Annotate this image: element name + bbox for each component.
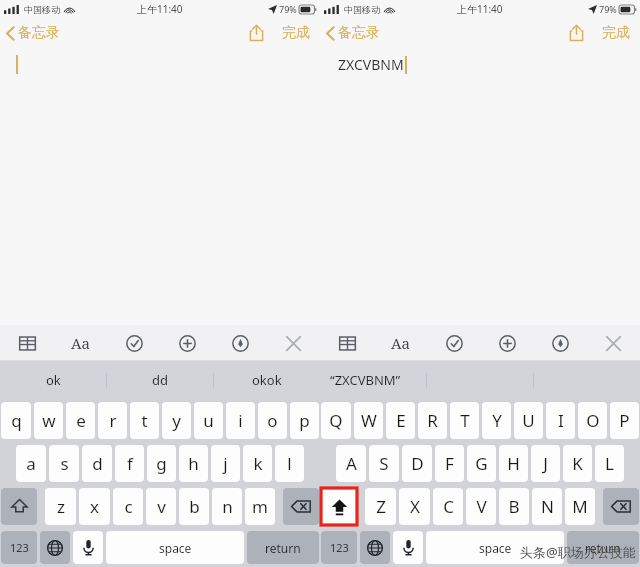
button[interactable]: j xyxy=(211,445,240,482)
button[interactable]: Add attachment xyxy=(161,325,214,361)
button[interactable]: c xyxy=(113,488,143,525)
button[interactable]: C xyxy=(433,488,463,525)
button[interactable]: 完成 xyxy=(278,20,314,46)
button[interactable]: Share xyxy=(565,20,588,46)
button[interactable]: M xyxy=(565,488,595,525)
button[interactable]: 123 xyxy=(321,531,357,564)
button[interactable]: 完成 xyxy=(598,20,634,46)
button[interactable]: R xyxy=(418,402,447,439)
button[interactable]: Dictation xyxy=(393,531,423,564)
button[interactable]: k xyxy=(243,445,272,482)
button[interactable]: p xyxy=(290,402,319,439)
button[interactable]: Checklist xyxy=(108,325,161,361)
button[interactable]: Backspace xyxy=(603,488,639,525)
staticText: X xyxy=(410,495,420,518)
button[interactable]: 备忘录 xyxy=(320,21,388,45)
button[interactable]: Table xyxy=(320,325,374,361)
button[interactable]: P xyxy=(610,402,639,439)
button[interactable]: Backspace xyxy=(283,488,319,525)
button[interactable]: S xyxy=(369,445,399,482)
button[interactable]: X xyxy=(399,488,430,525)
button[interactable]: Switch keyboard xyxy=(360,531,390,564)
button[interactable]: d xyxy=(82,445,112,482)
button[interactable]: Table xyxy=(0,325,54,361)
staticText: dd xyxy=(152,371,168,389)
button[interactable]: space xyxy=(106,531,244,564)
button[interactable]: Checklist xyxy=(428,325,481,361)
button[interactable]: J xyxy=(531,445,560,482)
staticText: B xyxy=(508,495,520,518)
button[interactable]: return xyxy=(567,531,639,564)
button[interactable]: ok xyxy=(0,361,106,399)
button[interactable]: “ZXCVBNM” xyxy=(320,361,426,399)
button[interactable]: okok xyxy=(214,361,320,399)
button[interactable]: i xyxy=(226,402,255,439)
button[interactable]: Aa xyxy=(374,325,428,361)
button[interactable]: Shift xyxy=(1,488,37,525)
button[interactable]: Shift xyxy=(321,488,357,525)
button[interactable]: m xyxy=(245,488,275,525)
button[interactable]: K xyxy=(563,445,592,482)
button[interactable]: Markup xyxy=(214,325,267,361)
button[interactable]: Add attachment xyxy=(481,325,534,361)
button[interactable]: o xyxy=(258,402,287,439)
button[interactable]: U xyxy=(514,402,543,439)
staticText: h xyxy=(188,452,199,475)
button[interactable]: h xyxy=(179,445,208,482)
button[interactable]: g xyxy=(147,445,176,482)
button[interactable]: L xyxy=(595,445,624,482)
button[interactable]: D xyxy=(402,445,432,482)
button[interactable]: n xyxy=(212,488,242,525)
button[interactable]: Switch keyboard xyxy=(40,531,70,564)
staticText: 中国移动 xyxy=(344,4,380,15)
button[interactable]: 123 xyxy=(1,531,37,564)
button[interactable]: Close keyboard xyxy=(267,325,320,361)
button[interactable]: q xyxy=(1,402,31,439)
button[interactable]: e xyxy=(66,402,95,439)
staticText: v xyxy=(157,495,166,518)
button[interactable]: 备忘录 xyxy=(0,21,68,45)
button[interactable]: v xyxy=(146,488,176,525)
staticText: return xyxy=(585,540,621,556)
button[interactable]: x xyxy=(79,488,110,525)
button[interactable]: u xyxy=(194,402,223,439)
button[interactable]: I xyxy=(546,402,575,439)
button[interactable]: space xyxy=(426,531,564,564)
button[interactable]: B xyxy=(499,488,529,525)
button[interactable]: Q xyxy=(321,402,351,439)
button[interactable]: Dictation xyxy=(73,531,103,564)
button[interactable]: Share xyxy=(245,20,268,46)
button[interactable]: G xyxy=(467,445,496,482)
button[interactable]: y xyxy=(162,402,191,439)
button[interactable]: Z xyxy=(365,488,396,525)
staticText: g xyxy=(156,452,167,475)
button[interactable]: Y xyxy=(482,402,511,439)
button[interactable]: V xyxy=(466,488,496,525)
staticText: r xyxy=(109,409,117,432)
button[interactable]: A xyxy=(336,445,366,482)
button[interactable]: F xyxy=(435,445,464,482)
button[interactable]: t xyxy=(130,402,159,439)
button[interactable]: Aa xyxy=(54,325,108,361)
button[interactable]: W xyxy=(354,402,383,439)
button[interactable]: dd xyxy=(107,361,213,399)
button[interactable]: Markup xyxy=(534,325,587,361)
button[interactable]: Close keyboard xyxy=(587,325,640,361)
button[interactable]: s xyxy=(49,445,79,482)
button[interactable]: H xyxy=(499,445,528,482)
button[interactable]: a xyxy=(16,445,46,482)
button[interactable]: f xyxy=(115,445,144,482)
button[interactable]: T xyxy=(450,402,479,439)
button[interactable]: r xyxy=(98,402,127,439)
button[interactable]: return xyxy=(247,531,319,564)
button[interactable]: w xyxy=(34,402,63,439)
button[interactable]: l xyxy=(275,445,304,482)
button[interactable]: N xyxy=(532,488,562,525)
button[interactable]: z xyxy=(45,488,76,525)
staticText: w xyxy=(42,409,56,432)
button[interactable]: b xyxy=(179,488,209,525)
button[interactable]: E xyxy=(386,402,415,439)
button[interactable]: O xyxy=(578,402,607,439)
